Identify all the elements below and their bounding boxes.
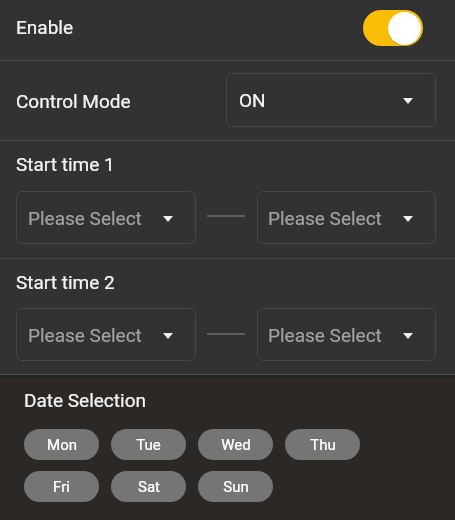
button[interactable]: Thu	[285, 429, 360, 460]
button[interactable]: Enable toggle	[363, 10, 423, 46]
button[interactable]: Sun	[198, 471, 273, 502]
staticText: Control Mode	[16, 90, 131, 112]
button[interactable]: Please Select	[257, 308, 436, 361]
button[interactable]: Please Select	[16, 191, 196, 244]
staticText: ON	[239, 89, 266, 111]
staticText: Wed	[221, 436, 251, 454]
button[interactable]: ON	[226, 73, 436, 127]
staticText: Start time 2	[16, 271, 115, 293]
staticText: Mon	[47, 436, 77, 454]
button[interactable]: Please Select	[16, 308, 196, 361]
staticText: Sun	[223, 478, 249, 496]
button[interactable]: Fri	[24, 471, 99, 502]
staticText: Sat	[138, 478, 160, 496]
staticText: Tue	[136, 436, 161, 454]
staticText: Enable	[16, 16, 73, 38]
button[interactable]: Sat	[111, 471, 186, 502]
staticText: Thu	[310, 436, 336, 454]
button[interactable]: Wed	[198, 429, 273, 460]
button[interactable]: Mon	[24, 429, 99, 460]
staticText: Please Select	[268, 207, 382, 229]
staticText: Date Selection	[24, 389, 146, 411]
staticText: Please Select	[268, 324, 382, 346]
staticText: Please Select	[28, 324, 142, 346]
button[interactable]: Tue	[111, 429, 186, 460]
button[interactable]: Enable	[0, 0, 455, 60]
staticText: Start time 1	[16, 153, 115, 175]
staticText: Please Select	[28, 207, 142, 229]
button[interactable]: Please Select	[257, 191, 436, 244]
staticText: Fri	[53, 478, 70, 496]
